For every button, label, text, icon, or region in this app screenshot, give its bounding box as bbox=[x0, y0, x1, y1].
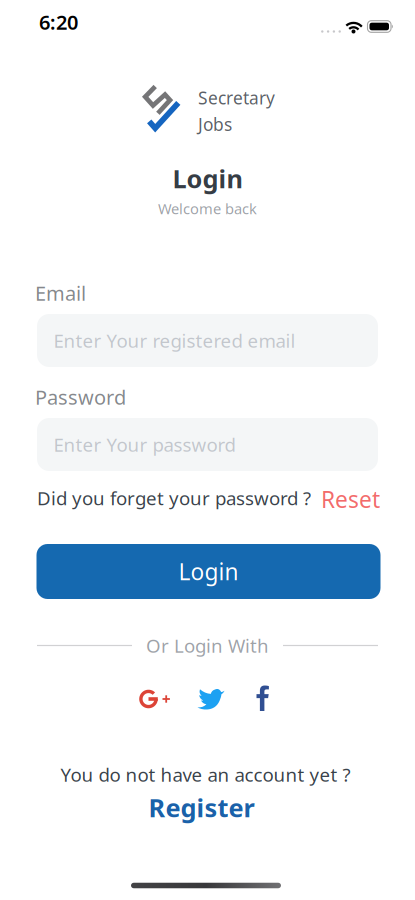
button[interactable]: Login with Twitter bbox=[197, 687, 225, 710]
staticText: Enter Your registered email bbox=[53, 328, 295, 353]
button[interactable]: Login with Google bbox=[139, 689, 171, 709]
staticText: Login bbox=[172, 162, 242, 195]
staticText: 6:20 bbox=[39, 9, 78, 35]
staticText: Did you forget your password ? bbox=[37, 486, 311, 510]
staticText: Login bbox=[178, 556, 238, 586]
staticText: You do not have an account yet ? bbox=[60, 762, 350, 787]
button[interactable]: Login with Facebook bbox=[256, 685, 269, 711]
staticText: Register bbox=[148, 791, 254, 824]
staticText: Or Login With bbox=[146, 633, 269, 658]
button[interactable]: Register bbox=[148, 791, 254, 824]
staticText: Password bbox=[35, 384, 126, 410]
staticText: Jobs bbox=[198, 113, 232, 136]
staticText: Reset bbox=[321, 484, 380, 514]
staticText: Enter Your password bbox=[53, 432, 235, 457]
staticText: Email bbox=[35, 280, 86, 306]
button[interactable]: Reset bbox=[321, 483, 380, 513]
button[interactable]: Login bbox=[36, 544, 380, 599]
staticText: Secretary bbox=[198, 86, 275, 109]
staticText: Welcome back bbox=[158, 199, 257, 218]
